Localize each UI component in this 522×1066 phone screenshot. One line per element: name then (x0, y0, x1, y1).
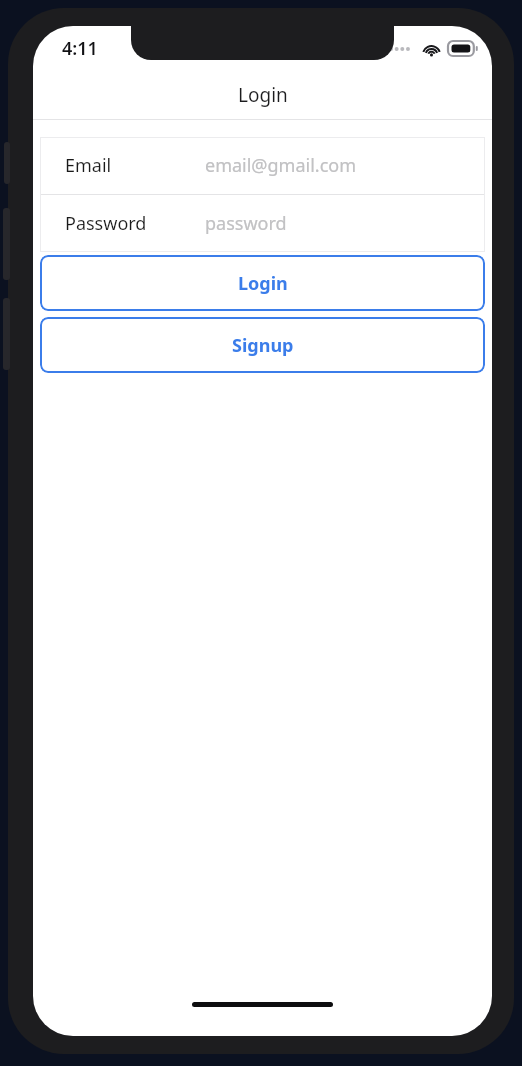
staticText: Email (65, 153, 112, 178)
staticText: Signup (232, 333, 294, 358)
staticText: 4:11 (62, 36, 98, 61)
staticText: email@gmail.com (205, 153, 357, 178)
button[interactable]: Signup (40, 317, 485, 373)
button[interactable]: Email (40, 137, 485, 194)
button[interactable]: Password (40, 195, 485, 252)
staticText: password (205, 211, 287, 236)
staticText: Password (65, 211, 147, 236)
staticText: Login (238, 82, 288, 108)
staticText: Login (238, 271, 288, 296)
button[interactable]: Login (40, 255, 485, 311)
